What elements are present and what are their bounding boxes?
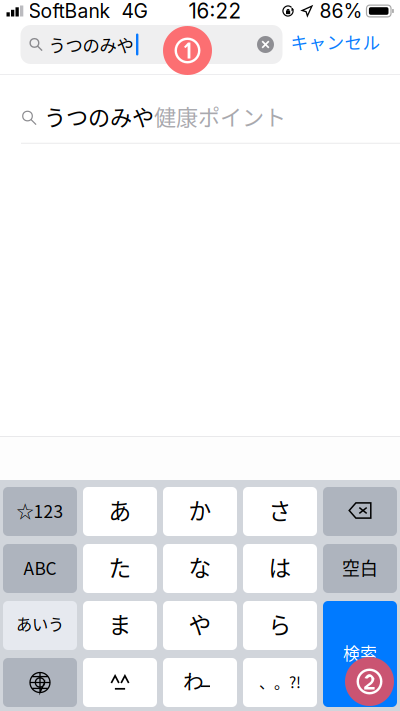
staticText: ☆123 (16, 498, 63, 523)
button[interactable]: 検索 (323, 601, 397, 707)
button[interactable]: Emoticons (83, 658, 157, 707)
button[interactable]: Switch keyboard (3, 658, 77, 707)
staticText: ABC (23, 555, 56, 580)
button[interactable]: ま (83, 601, 157, 650)
staticText: や (188, 607, 211, 640)
staticText: か (188, 493, 211, 526)
staticText: 健康ポイント (154, 100, 286, 132)
staticText: な (188, 550, 211, 583)
button[interactable]: 空白 (323, 544, 397, 593)
button[interactable]: キャンセル (282, 25, 388, 64)
button[interactable]: さ (243, 487, 317, 536)
button[interactable]: ABC (3, 544, 77, 593)
button[interactable]: あ (83, 487, 157, 536)
staticText: た (108, 550, 131, 583)
staticText: わ (183, 665, 204, 695)
button[interactable]: た (83, 544, 157, 593)
staticText: あいう (16, 612, 64, 635)
button[interactable]: Delete (323, 487, 397, 536)
staticText: ま (108, 607, 131, 640)
staticText: キャンセル (290, 29, 380, 54)
staticText: うつのみや (48, 32, 133, 57)
staticText: あ (108, 493, 131, 526)
button[interactable]: ら (243, 601, 317, 650)
button[interactable]: は (243, 544, 317, 593)
button[interactable]: うつのみや (0, 95, 400, 144)
staticText: うつのみや (44, 100, 154, 132)
staticText: 86% (319, 0, 362, 23)
staticText: さ (268, 493, 291, 526)
button[interactable]: 、。?! (243, 658, 317, 707)
button[interactable]: ☆123 (3, 487, 77, 536)
staticText: 空白 (342, 555, 378, 580)
staticText: は (268, 550, 291, 583)
staticText: 4G (121, 0, 147, 23)
staticText: 16:22 (188, 0, 241, 23)
staticText: 検索 (343, 640, 377, 665)
button[interactable]: や (163, 601, 237, 650)
button[interactable]: あいう (3, 601, 77, 650)
staticText: 、。?! (259, 670, 301, 693)
button[interactable]: わ (163, 658, 237, 707)
button[interactable]: な (163, 544, 237, 593)
button[interactable]: Clear text (257, 36, 274, 53)
staticText: SoftBank (28, 0, 110, 23)
staticText: ら (268, 607, 291, 640)
button[interactable]: か (163, 487, 237, 536)
